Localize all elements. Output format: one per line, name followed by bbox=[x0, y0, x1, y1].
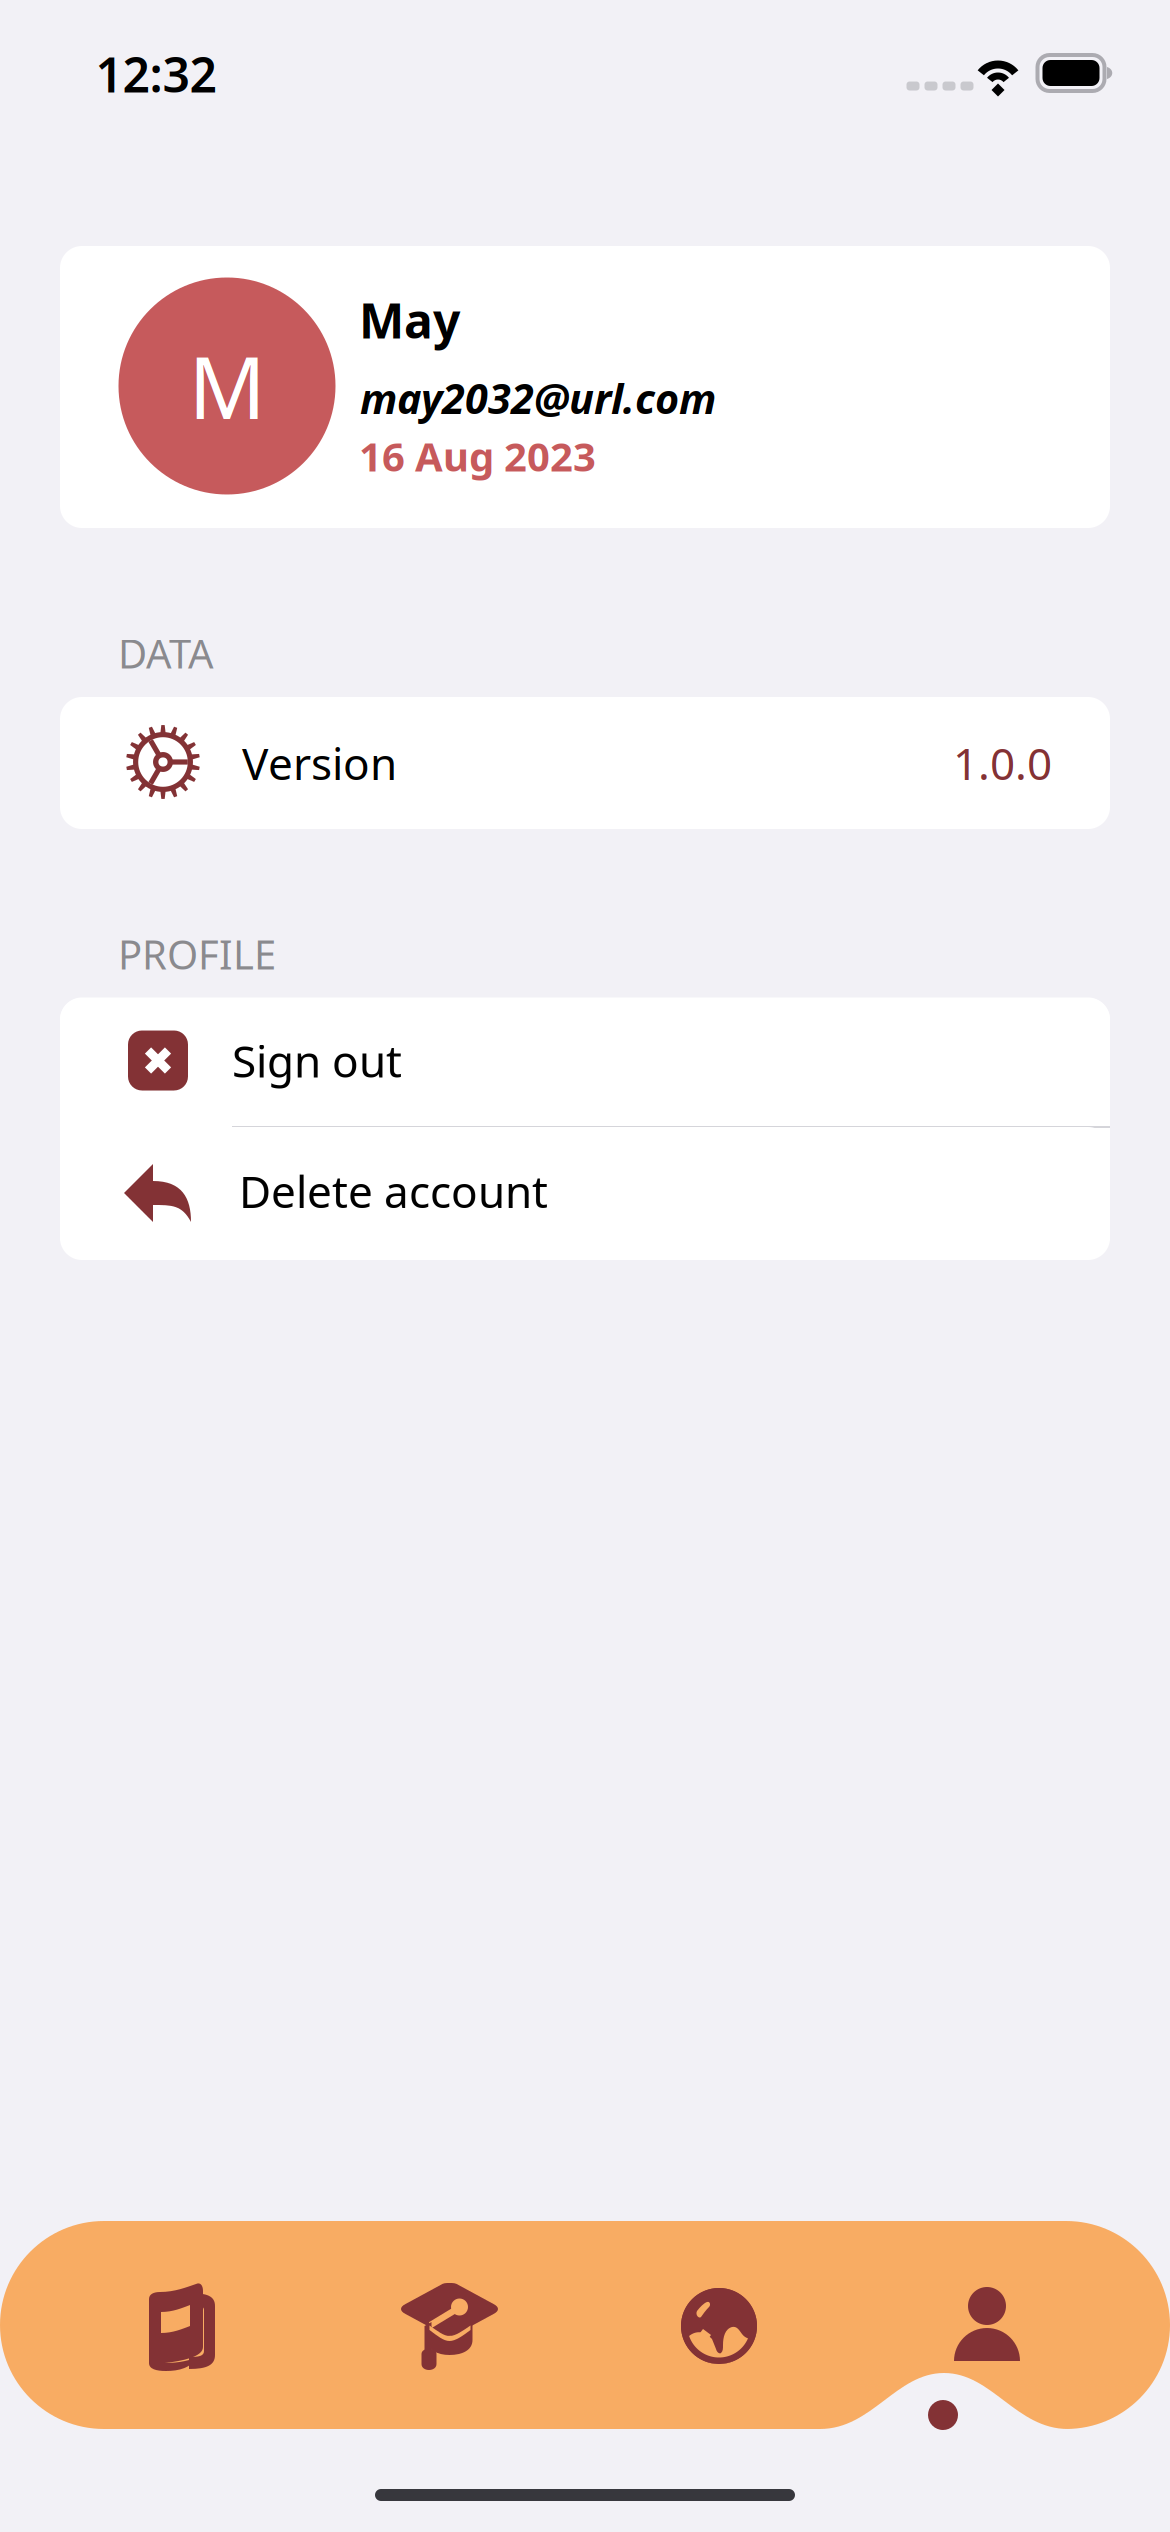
button[interactable]: Profile bbox=[853, 2222, 1121, 2430]
button[interactable]: Version bbox=[60, 697, 1110, 829]
button[interactable]: Library bbox=[48, 2222, 316, 2430]
button[interactable]: Delete account bbox=[60, 1127, 1110, 1257]
staticText: DATA bbox=[118, 626, 214, 679]
staticText: Version bbox=[242, 734, 397, 792]
staticText: Delete account bbox=[239, 1162, 548, 1220]
staticText: 1.0.0 bbox=[953, 734, 1052, 792]
staticText: May bbox=[359, 288, 460, 352]
staticText: M bbox=[188, 329, 265, 443]
staticText: 12:32 bbox=[95, 42, 216, 106]
button[interactable]: Sign out bbox=[60, 997, 1110, 1126]
staticText: 16 Aug 2023 bbox=[359, 429, 596, 482]
button[interactable]: Explore bbox=[585, 2222, 853, 2430]
staticText: may2032@url.com bbox=[360, 371, 716, 425]
staticText: PROFILE bbox=[118, 927, 276, 980]
button[interactable]: Courses bbox=[316, 2222, 584, 2430]
staticText: Sign out bbox=[232, 1031, 402, 1090]
